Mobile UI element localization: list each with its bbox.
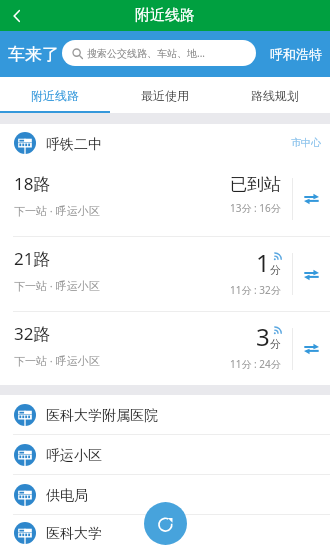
button[interactable]: 呼运小区	[0, 435, 330, 474]
button[interactable]: 路线规划	[220, 77, 330, 113]
staticText: 下一站 · 呼运小区	[14, 203, 100, 218]
button[interactable]: 医科大学附属医院	[0, 395, 330, 434]
staticText: 分	[270, 337, 281, 351]
button[interactable]: 呼和浩特	[270, 46, 322, 62]
button[interactable]: 32路	[0, 312, 330, 385]
button[interactable]: 18路	[0, 161, 330, 236]
button[interactable]: Switch direction	[293, 237, 330, 311]
staticText: 附近线路	[135, 6, 195, 25]
button[interactable]: 21路	[0, 237, 330, 311]
staticText: 市中心	[291, 136, 321, 149]
button[interactable]: 附近线路	[0, 77, 110, 113]
staticText: 已到站	[230, 174, 281, 195]
button[interactable]: 最近使用	[110, 77, 220, 113]
staticText: 最近使用	[141, 88, 189, 103]
staticText: 32路	[14, 322, 51, 345]
staticText: 下一站 · 呼运小区	[14, 353, 100, 368]
staticText: 医科大学附属医院	[46, 407, 158, 425]
staticText: 3	[256, 320, 270, 353]
button[interactable]: 搜索公交线路、车站、地...	[62, 40, 256, 66]
staticText: 附近线路	[31, 88, 79, 103]
staticText: 1	[256, 246, 270, 279]
staticText: 路线规划	[251, 88, 299, 103]
staticText: 11分 : 32分	[230, 283, 281, 297]
staticText: 呼运小区	[46, 447, 102, 465]
button[interactable]: 呼铁二中	[0, 124, 330, 161]
staticText: 搜索公交线路、车站、地...	[87, 46, 206, 60]
staticText: 11分 : 24分	[230, 357, 281, 371]
staticText: 21路	[14, 247, 51, 270]
button[interactable]: Switch direction	[293, 161, 330, 236]
staticText: 下一站 · 呼运小区	[14, 278, 100, 293]
button[interactable]: Refresh	[144, 502, 187, 545]
button[interactable]: 供电局	[0, 475, 330, 514]
button[interactable]: Back	[0, 0, 34, 31]
staticText: 供电局	[46, 487, 88, 505]
staticText: 医科大学	[46, 525, 102, 543]
staticText: 13分 : 16分	[230, 201, 281, 215]
staticText: 18路	[14, 172, 51, 195]
staticText: 车来了	[8, 44, 59, 65]
button[interactable]: Switch direction	[293, 312, 330, 385]
staticText: 呼铁二中	[46, 136, 102, 154]
button[interactable]: 医科大学	[0, 515, 330, 550]
staticText: 分	[270, 263, 281, 277]
